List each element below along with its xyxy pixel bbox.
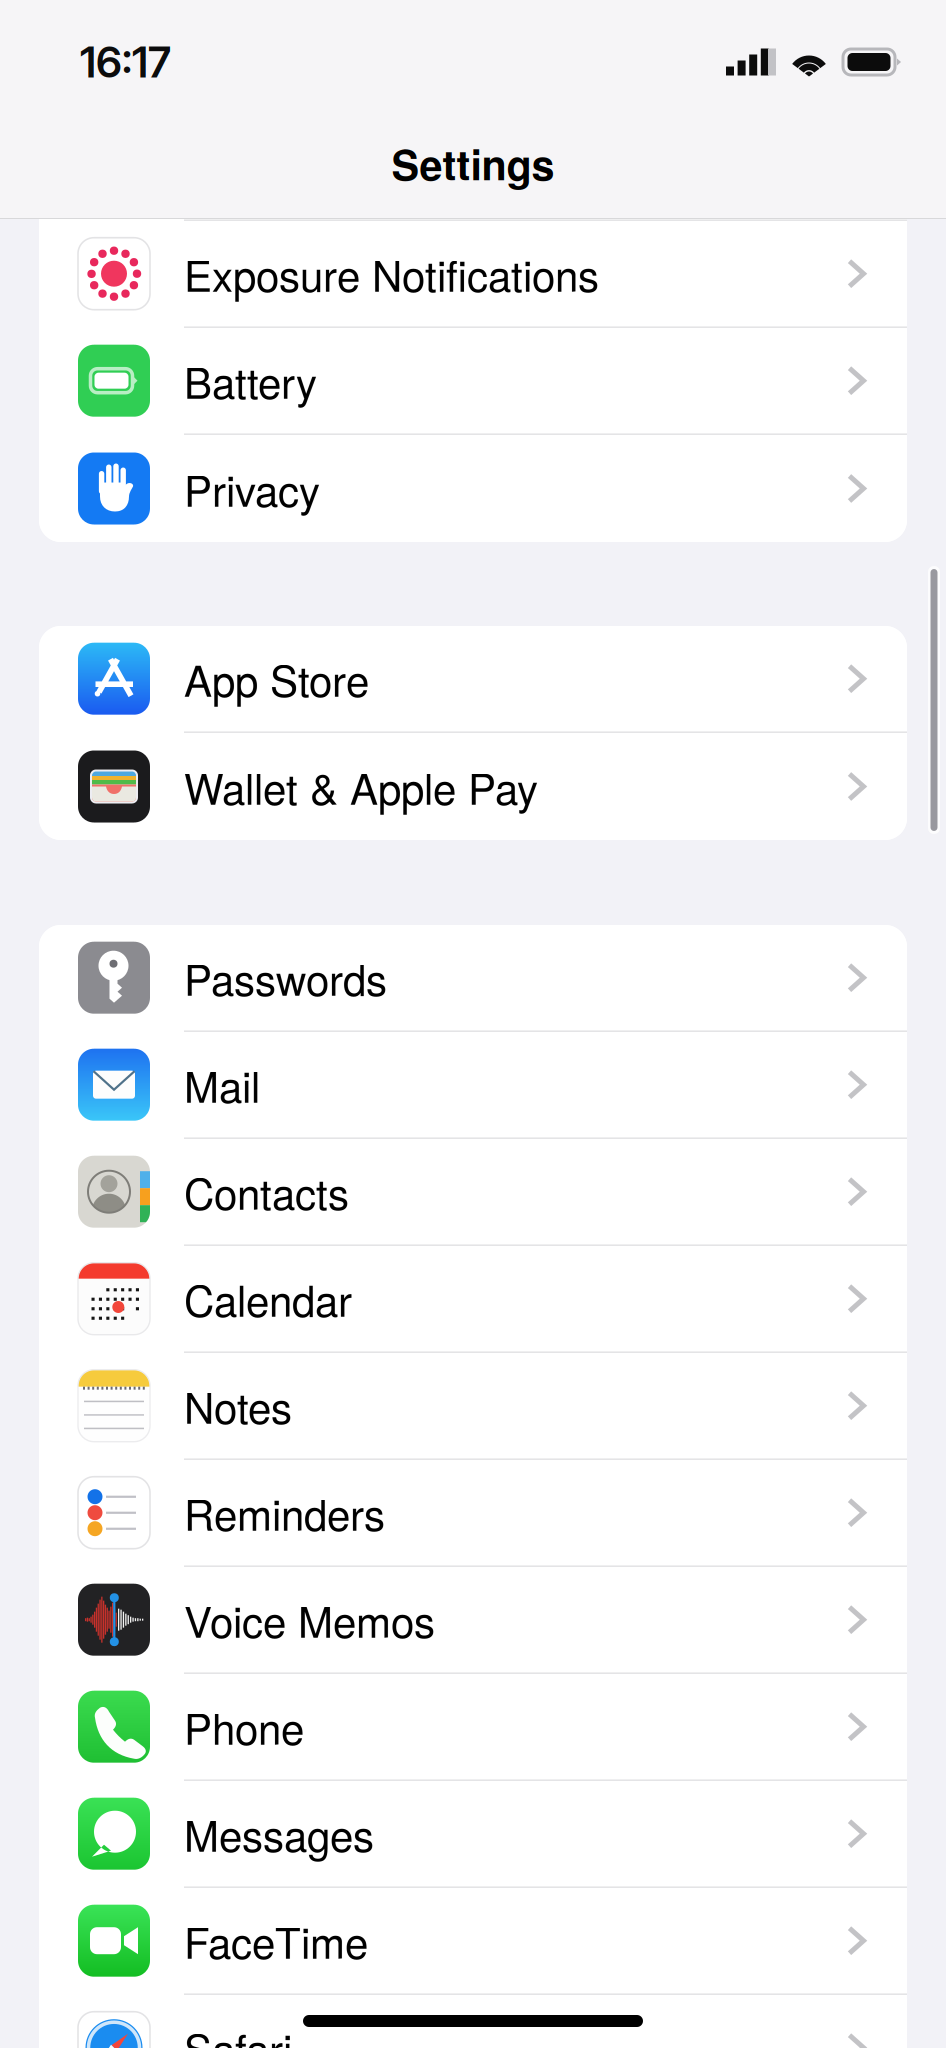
button[interactable]: Safari bbox=[39, 1995, 907, 2048]
staticText: Messages bbox=[184, 1804, 374, 1864]
button[interactable]: Exposure Notifications bbox=[39, 221, 907, 328]
staticText: Safari bbox=[184, 2018, 292, 2048]
staticText: Mail bbox=[184, 1055, 260, 1115]
staticText: Phone bbox=[184, 1697, 304, 1757]
staticText: Settings bbox=[391, 134, 554, 193]
button[interactable]: Battery bbox=[39, 328, 907, 435]
staticText: Passwords bbox=[184, 948, 387, 1008]
button[interactable]: Privacy bbox=[39, 435, 907, 542]
button[interactable]: Passwords bbox=[39, 925, 907, 1032]
staticText: 16:17 bbox=[80, 36, 171, 88]
staticText: Wallet & Apple Pay bbox=[184, 756, 538, 816]
button[interactable]: Voice Memos bbox=[39, 1567, 907, 1674]
staticText: App Store bbox=[184, 649, 369, 709]
button[interactable]: FaceTime bbox=[39, 1888, 907, 1995]
staticText: Notes bbox=[184, 1376, 292, 1436]
staticText: Voice Memos bbox=[184, 1590, 435, 1650]
staticText: Contacts bbox=[184, 1162, 349, 1222]
staticText: Privacy bbox=[184, 458, 320, 518]
button[interactable]: Reminders bbox=[39, 1460, 907, 1567]
staticText: Reminders bbox=[184, 1483, 385, 1543]
button[interactable]: Messages bbox=[39, 1781, 907, 1888]
staticText: Calendar bbox=[184, 1269, 352, 1329]
button[interactable]: Contacts bbox=[39, 1139, 907, 1246]
button[interactable] bbox=[39, 114, 907, 221]
button[interactable]: Calendar bbox=[39, 1246, 907, 1353]
button[interactable]: App Store bbox=[39, 626, 907, 733]
staticText: Battery bbox=[184, 351, 317, 411]
button[interactable]: Notes bbox=[39, 1353, 907, 1460]
button[interactable]: Phone bbox=[39, 1674, 907, 1781]
button[interactable]: Wallet & Apple Pay bbox=[39, 733, 907, 840]
staticText: FaceTime bbox=[184, 1911, 368, 1971]
staticText: Exposure Notifications bbox=[184, 244, 599, 304]
button[interactable]: Mail bbox=[39, 1032, 907, 1139]
